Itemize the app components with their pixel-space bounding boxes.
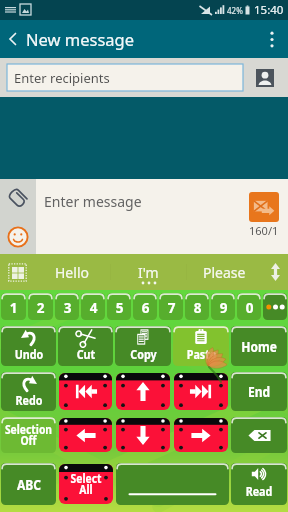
staticText: 8 xyxy=(193,297,201,317)
button[interactable]: Navigate up xyxy=(0,20,26,58)
button[interactable]: Choose contacts xyxy=(256,69,274,87)
staticText: End xyxy=(248,382,270,401)
button[interactable]: 1 xyxy=(1,293,26,320)
button[interactable]: 3 xyxy=(55,293,79,320)
staticText: I'm xyxy=(138,263,159,282)
button[interactable]: Undo xyxy=(1,326,56,366)
staticText: 42% xyxy=(227,5,243,16)
button[interactable]: Down xyxy=(116,418,170,452)
button[interactable]: Up xyxy=(116,373,170,410)
button[interactable]: Right xyxy=(174,418,228,452)
staticText: Copy xyxy=(130,346,157,363)
button[interactable]: Select all xyxy=(59,464,113,504)
button[interactable]: Home xyxy=(231,326,287,366)
staticText: 9 xyxy=(219,297,227,317)
button[interactable]: End xyxy=(231,372,287,411)
staticText: Redo xyxy=(15,392,43,409)
button[interactable]: 8 xyxy=(185,293,209,320)
staticText: Home xyxy=(241,337,277,356)
button[interactable]: Cut xyxy=(58,326,113,366)
button[interactable]: Attach xyxy=(0,179,36,219)
button[interactable]: Expand suggestions xyxy=(262,254,288,290)
button[interactable]: Enter recipients xyxy=(7,64,243,91)
button[interactable]: Keyboard settings xyxy=(0,254,34,290)
button[interactable]: More symbols xyxy=(263,293,287,320)
button[interactable]: Emoji xyxy=(0,219,36,254)
staticText: Please xyxy=(203,263,246,282)
staticText: Cut xyxy=(76,346,95,363)
button[interactable]: Read xyxy=(231,463,287,505)
staticText: Paste xyxy=(186,346,216,363)
button[interactable]: Space xyxy=(116,463,229,505)
staticText: Selection Off xyxy=(5,421,52,449)
staticText: New message xyxy=(26,28,135,50)
button[interactable]: Paste xyxy=(173,326,229,366)
button[interactable]: Previous word xyxy=(59,373,112,410)
staticText: Undo xyxy=(14,346,44,363)
staticText: 3 xyxy=(63,297,72,317)
button[interactable]: ABC xyxy=(1,463,56,505)
staticText: 160/1 xyxy=(249,223,279,238)
staticText: Read xyxy=(245,483,273,500)
staticText: Hello xyxy=(55,263,89,282)
button[interactable]: 0 xyxy=(237,293,261,320)
button[interactable]: Copy xyxy=(115,326,171,366)
button[interactable]: 2 xyxy=(28,293,53,320)
staticText: 5 xyxy=(115,297,123,317)
staticText: ABC xyxy=(17,475,41,494)
button[interactable]: Send message xyxy=(249,192,279,222)
button[interactable]: 6 xyxy=(133,293,157,320)
button[interactable]: Backspace xyxy=(231,417,287,453)
staticText: Enter message xyxy=(44,192,142,211)
staticText: 7 xyxy=(167,297,175,317)
staticText: 15:40 xyxy=(254,2,284,18)
button[interactable]: 7 xyxy=(159,293,183,320)
button[interactable]: More options xyxy=(259,20,285,58)
button[interactable]: Left xyxy=(59,418,112,452)
button[interactable]: 9 xyxy=(211,293,235,320)
button[interactable]: Please xyxy=(187,254,262,290)
staticText: 0 xyxy=(245,297,253,317)
staticText: 1 xyxy=(9,297,18,317)
staticText: 4 xyxy=(89,297,97,317)
button[interactable]: Next word xyxy=(174,373,228,410)
button[interactable]: 5 xyxy=(107,293,131,320)
button[interactable]: 4 xyxy=(81,293,105,320)
button[interactable]: Redo xyxy=(1,372,56,411)
staticText: Select All xyxy=(70,470,101,498)
button[interactable]: I'm xyxy=(111,254,186,290)
staticText: 6 xyxy=(141,297,149,317)
button[interactable]: Selection Off xyxy=(1,417,56,453)
staticText: 2 xyxy=(36,297,45,317)
button[interactable]: Hello xyxy=(34,254,110,290)
staticText: Enter recipients xyxy=(14,69,110,87)
